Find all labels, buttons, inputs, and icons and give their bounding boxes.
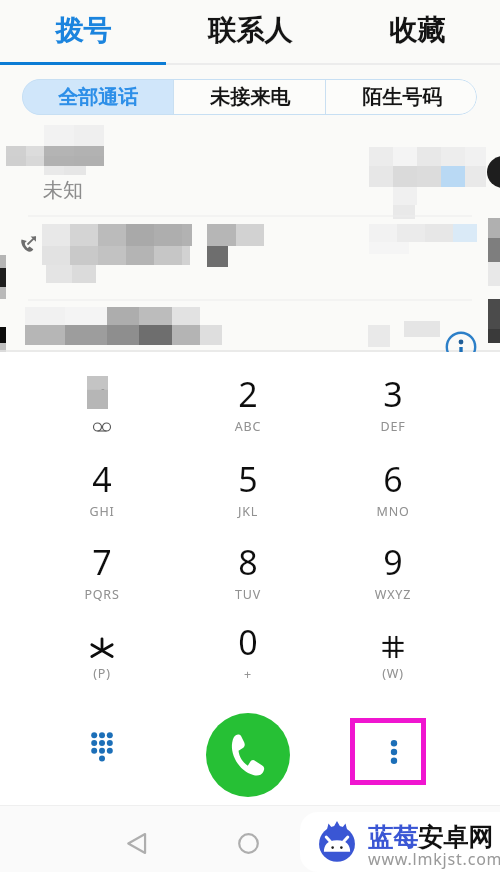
button[interactable]: 3 (325, 354, 461, 436)
staticText: 未知 (43, 178, 83, 203)
button[interactable]: More options (350, 718, 426, 785)
staticText: + (180, 666, 316, 683)
button[interactable]: 陌生号码 (326, 79, 477, 115)
staticText: 陌生号码 (362, 85, 442, 110)
button[interactable]: 7 (34, 522, 170, 604)
button[interactable]: Call (206, 713, 290, 797)
staticText: DEF (325, 418, 461, 435)
button[interactable]: (P) (34, 602, 170, 684)
staticText: 1 (34, 371, 170, 417)
button[interactable]: 5 (180, 439, 316, 521)
staticText: 拨号 (55, 13, 111, 48)
button[interactable]: 1 (34, 354, 170, 436)
staticText: ABC (180, 418, 316, 435)
staticText: WXYZ (325, 586, 461, 603)
staticText: 3 (325, 371, 461, 417)
staticText: 5 (180, 456, 316, 502)
button[interactable]: 拨号 (0, 0, 166, 65)
button[interactable]: 4 (34, 439, 170, 521)
button[interactable]: 6 (325, 439, 461, 521)
staticText: GHI (34, 503, 170, 520)
button[interactable]: 联系人 (166, 0, 333, 65)
staticText: TUV (180, 586, 316, 603)
staticText: 2 (180, 371, 316, 417)
button[interactable]: 未接来电 (174, 79, 325, 115)
staticText: www.lmkjst.com (368, 848, 500, 870)
staticText: 安卓网 (418, 822, 493, 853)
staticText: 0 (180, 619, 316, 665)
button[interactable]: 全部通话 (22, 79, 173, 115)
button[interactable] (0, 125, 500, 352)
staticText: 联系人 (208, 13, 292, 48)
staticText: 9 (325, 539, 461, 585)
button[interactable]: 8 (180, 522, 316, 604)
button[interactable]: 收藏 (333, 0, 500, 65)
button[interactable]: 9 (325, 522, 461, 604)
staticText: 蓝莓 (368, 822, 418, 853)
staticText: JKL (180, 503, 316, 520)
button[interactable]: Keypad (62, 712, 142, 781)
button[interactable]: 2 (180, 354, 316, 436)
staticText: (P) (34, 665, 170, 682)
staticText: 8 (180, 539, 316, 585)
staticText (34, 418, 170, 435)
staticText: 4 (34, 456, 170, 502)
staticText: 收藏 (389, 13, 445, 48)
staticText: (W) (325, 665, 461, 682)
staticText: 6 (325, 456, 461, 502)
button[interactable]: Back (107, 813, 167, 872)
staticText: MNO (325, 503, 461, 520)
staticText: 7 (34, 539, 170, 585)
button[interactable]: Home (218, 813, 278, 872)
button[interactable]: 0 (180, 602, 316, 684)
staticText: 未接来电 (210, 85, 290, 110)
staticText: 全部通话 (58, 85, 138, 110)
staticText: PQRS (34, 586, 170, 603)
button[interactable]: (W) (325, 602, 461, 684)
